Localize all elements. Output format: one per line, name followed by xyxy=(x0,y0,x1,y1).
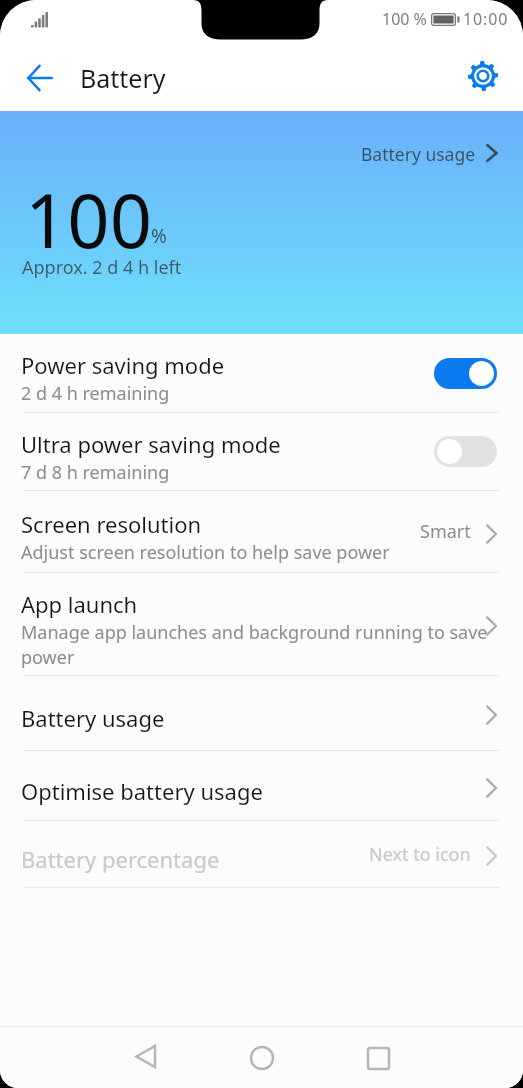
staticText: Manage app launches and background runni… xyxy=(21,620,489,670)
staticText: 100 % xyxy=(382,8,427,30)
button[interactable]: On xyxy=(434,358,497,389)
button[interactable]: Optimise battery usage xyxy=(0,751,523,820)
button[interactable]: Settings xyxy=(458,53,508,103)
staticText: Ultra power saving mode xyxy=(21,429,281,459)
staticText: Optimise battery usage xyxy=(21,776,263,806)
button[interactable]: Home xyxy=(238,1034,286,1082)
staticText: Approx. 2 d 4 h left xyxy=(22,255,182,280)
staticText: Battery usage xyxy=(361,142,476,166)
button[interactable]: Battery usage xyxy=(353,136,506,172)
button[interactable]: Power saving mode xyxy=(0,334,523,412)
button[interactable]: Back xyxy=(123,1033,171,1081)
staticText: Adjust screen resolution to help save po… xyxy=(21,540,390,565)
button[interactable]: Ultra power saving mode xyxy=(0,413,523,490)
button[interactable]: Recents xyxy=(354,1034,402,1082)
staticText: Battery usage xyxy=(21,703,165,733)
button[interactable]: App launch xyxy=(0,573,523,675)
button[interactable]: Off xyxy=(434,436,497,467)
staticText: Power saving mode xyxy=(21,350,225,380)
staticText: 2 d 4 h remaining xyxy=(21,381,170,406)
staticText: App launch xyxy=(21,589,138,619)
button[interactable]: Battery percentage xyxy=(0,821,523,887)
staticText: Next to icon xyxy=(369,842,471,867)
staticText: Battery percentage xyxy=(21,844,220,874)
staticText: 10:00 xyxy=(463,8,509,30)
button[interactable]: Screen resolution xyxy=(0,491,523,572)
staticText: Battery xyxy=(80,61,166,95)
staticText: 100 xyxy=(25,169,152,270)
staticText: % xyxy=(151,223,167,249)
button[interactable]: Back xyxy=(15,53,65,103)
staticText: Smart xyxy=(420,519,471,544)
staticText: 7 d 8 h remaining xyxy=(21,460,170,485)
staticText: Screen resolution xyxy=(21,509,202,539)
button[interactable]: Battery usage xyxy=(0,676,523,750)
